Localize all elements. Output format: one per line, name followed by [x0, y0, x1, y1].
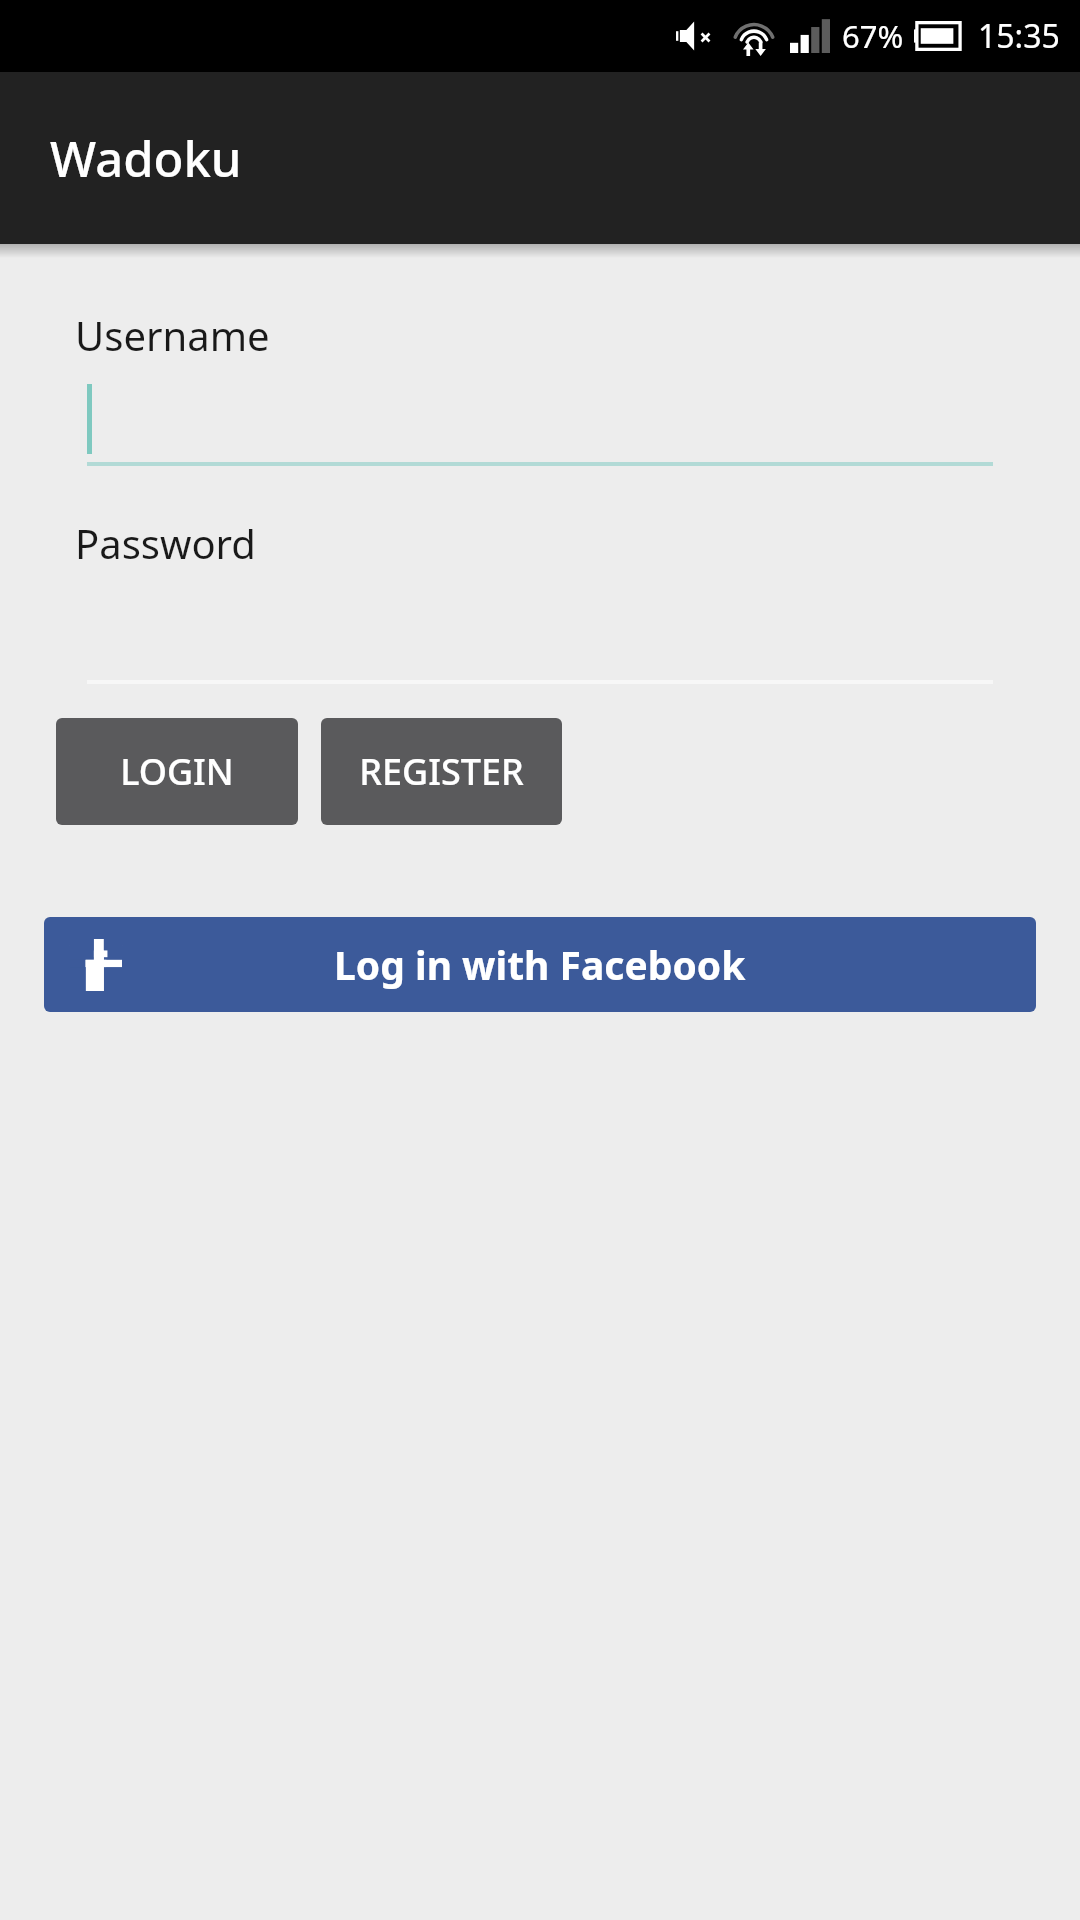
staticText: Password: [75, 516, 256, 570]
staticText: Log in with Facebook: [334, 938, 746, 991]
button[interactable]: LOGIN: [56, 718, 298, 825]
staticText: 15:35: [978, 14, 1060, 58]
other: Muted: [676, 21, 712, 51]
staticText: LOGIN: [120, 747, 234, 796]
other: Battery: [914, 21, 962, 51]
staticText: 67%: [842, 15, 904, 57]
other: Signal: [790, 19, 830, 53]
staticText: Username: [75, 308, 270, 362]
button[interactable]: Log in with Facebook: [44, 917, 1036, 1012]
button[interactable]: REGISTER: [321, 718, 562, 825]
other: Facebook: [70, 939, 122, 991]
staticText: Wadoku: [50, 125, 242, 192]
button[interactable]: [0, 376, 1080, 462]
staticText: REGISTER: [359, 747, 524, 796]
other: Wi-Fi: [732, 16, 776, 56]
